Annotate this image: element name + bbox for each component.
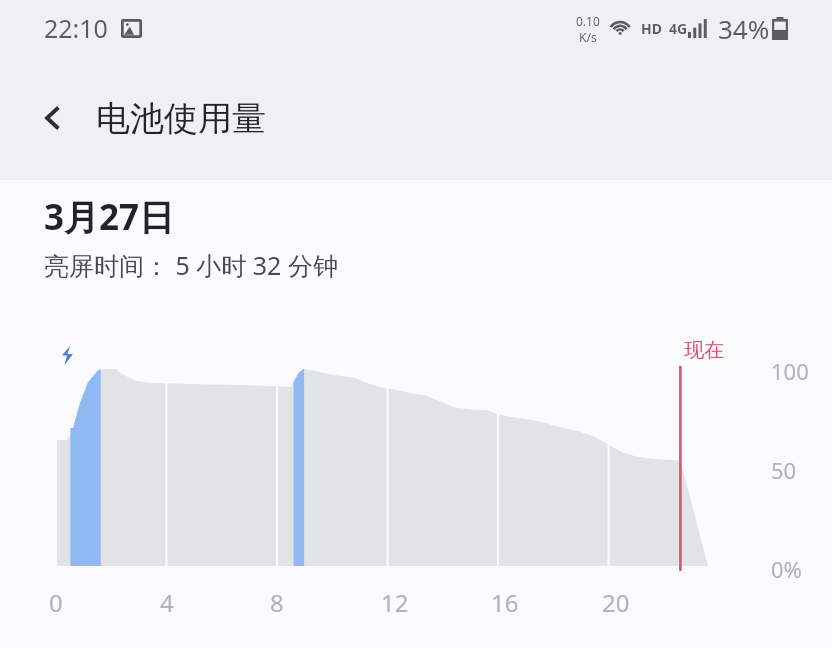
staticText: 0.10 [576,13,600,29]
button[interactable]: Back [24,89,82,147]
staticText: HD [641,19,662,38]
staticText: 4 [160,586,174,619]
staticText: 22:10 [44,11,108,45]
staticText: 现在 [684,338,724,363]
staticText: 3月27日 [44,193,175,241]
staticText: 50 [771,455,797,485]
staticText: 4G [669,19,688,38]
staticText: 20 [602,586,630,619]
staticText: K/s [579,29,597,45]
staticText: 0% [771,554,802,584]
staticText: 8 [270,586,284,619]
staticText: 16 [491,586,519,619]
staticText: 0 [49,586,63,619]
staticText: 12 [381,586,409,619]
staticText: 电池使用量 [96,97,266,140]
staticText: 34% [718,11,770,46]
staticText: 100 [771,356,809,386]
staticText: 亮屏时间： 5 小时 32 分钟 [44,248,338,282]
